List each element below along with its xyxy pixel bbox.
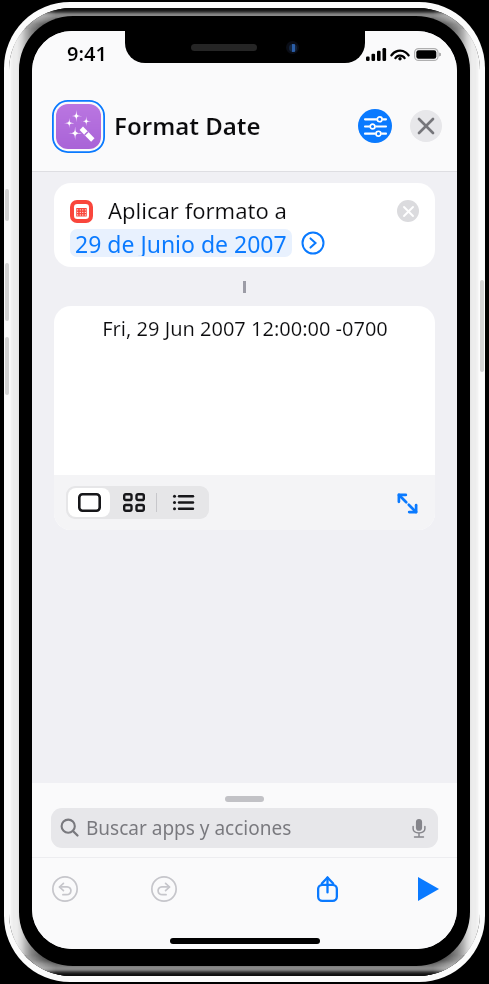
staticText: Aplicar formato a [108,195,287,225]
button[interactable]: Undo [49,873,81,905]
button[interactable]: Redo [148,873,180,905]
button[interactable]: Voice search [406,815,432,841]
button[interactable]: Settings [358,109,392,143]
staticText: 29 de Junio de 2007 [75,229,287,256]
button[interactable]: Close [410,110,442,142]
button[interactable]: Shortcut icon [52,100,105,153]
button[interactable]: Expand [394,490,420,516]
button[interactable]: List view [157,487,208,518]
staticText: Buscar apps y acciones [86,815,292,841]
button[interactable]: Aplicar formato a [54,183,435,267]
button[interactable]: Share [311,873,343,905]
button[interactable]: Run [412,873,444,905]
staticText: Fri, 29 Jun 2007 12:00:00 -0700 [102,315,388,342]
button[interactable]: Buscar apps y acciones [51,808,438,848]
button[interactable]: Remove action [397,200,419,222]
staticText: Format Date [114,109,261,142]
button[interactable]: Grid view [112,487,156,518]
staticText: 9:41 [67,40,107,67]
button[interactable]: Single view [68,488,110,517]
